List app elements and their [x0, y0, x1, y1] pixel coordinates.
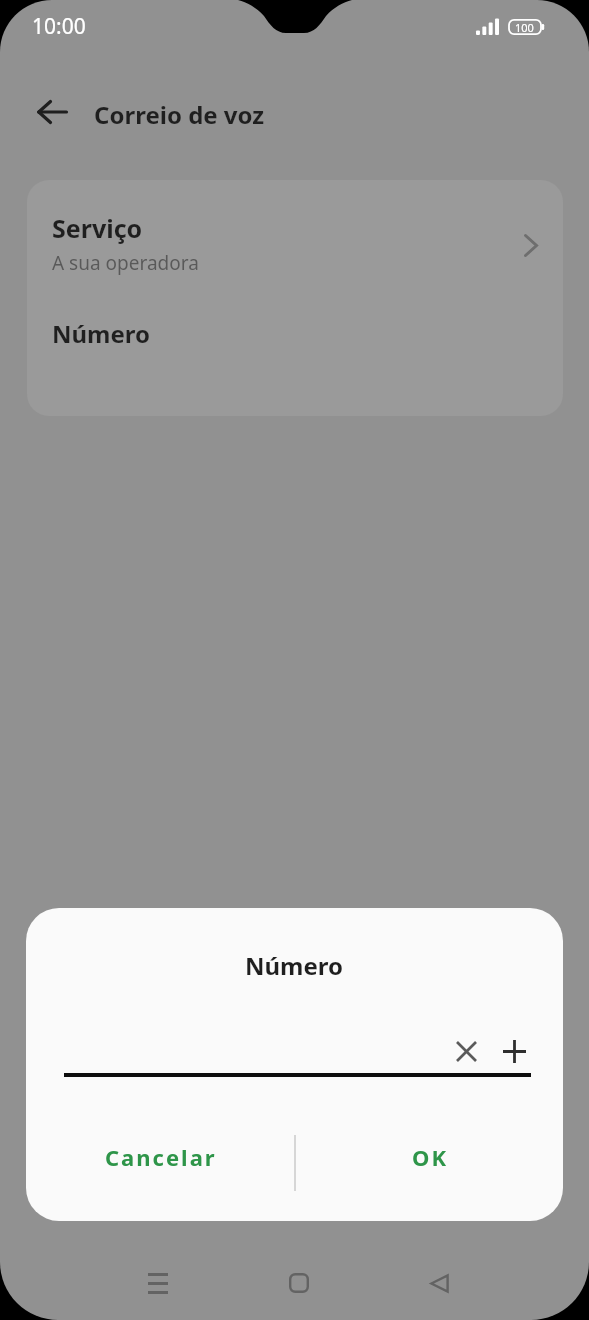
button[interactable]: Número	[27, 305, 563, 361]
staticText: A sua operadora	[52, 250, 199, 276]
button[interactable]: Recent apps	[128, 1253, 188, 1313]
staticText: Serviço	[52, 211, 143, 245]
button[interactable]: Clear	[443, 1028, 489, 1074]
staticText: Número	[52, 317, 151, 350]
button[interactable]: OK	[294, 1104, 563, 1210]
staticText: 10:00	[32, 12, 86, 41]
staticText: Número	[245, 949, 344, 982]
staticText: Cancelar	[105, 1142, 217, 1172]
button[interactable]: Cancelar	[26, 1104, 294, 1210]
staticText: 100	[515, 20, 534, 35]
button[interactable]: Back	[409, 1253, 469, 1313]
button[interactable]: Serviço	[27, 206, 563, 280]
button[interactable]: Back	[28, 88, 76, 136]
button[interactable]: Add	[491, 1028, 537, 1074]
staticText: Correio de voz	[94, 98, 265, 131]
button[interactable]: Home	[269, 1253, 329, 1313]
staticText: OK	[412, 1142, 449, 1172]
